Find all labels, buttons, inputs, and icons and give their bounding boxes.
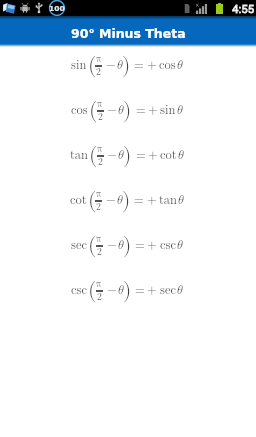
staticText: ( bbox=[88, 235, 97, 257]
staticText: cot bbox=[70, 194, 87, 207]
staticText: 𝜃 bbox=[118, 104, 124, 117]
staticText: = bbox=[134, 194, 144, 207]
staticText: 2 bbox=[97, 247, 102, 257]
staticText: ) bbox=[122, 55, 131, 77]
staticText: − bbox=[107, 104, 117, 117]
staticText: csc bbox=[160, 239, 177, 252]
staticText: cos bbox=[71, 104, 88, 117]
staticText: π bbox=[97, 144, 103, 154]
staticText: − bbox=[107, 239, 117, 252]
staticText: π bbox=[96, 234, 102, 244]
staticText: + bbox=[147, 239, 157, 252]
staticText: sin bbox=[71, 59, 87, 72]
staticText: 100 bbox=[49, 4, 65, 13]
staticText: π bbox=[96, 279, 102, 289]
staticText: 𝜃 bbox=[118, 149, 124, 162]
staticText: − bbox=[106, 59, 116, 72]
staticText: ( bbox=[88, 190, 97, 212]
staticText: cot bbox=[160, 149, 177, 162]
staticText: π bbox=[96, 54, 102, 64]
staticText: ( bbox=[89, 145, 98, 167]
staticText: csc bbox=[71, 284, 88, 297]
staticText: π bbox=[96, 189, 102, 199]
staticText: tan bbox=[70, 149, 89, 162]
staticText: 𝜃 bbox=[177, 239, 183, 252]
staticText: 𝜃 bbox=[178, 149, 184, 162]
staticText: 2 bbox=[96, 202, 101, 212]
staticText: 2 bbox=[98, 157, 103, 167]
staticText: 𝜃 bbox=[177, 284, 183, 297]
staticText: 2 bbox=[97, 292, 102, 302]
staticText: tan bbox=[159, 194, 178, 207]
button[interactable]: 90° Minus Theta bbox=[0, 16, 256, 44]
staticText: + bbox=[147, 194, 157, 207]
staticText: cos bbox=[159, 59, 176, 72]
staticText: ( bbox=[89, 100, 98, 122]
staticText: 90° Minus Theta bbox=[71, 26, 186, 41]
button[interactable]: sin bbox=[0, 52, 256, 97]
staticText: ) bbox=[122, 190, 131, 212]
staticText: + bbox=[147, 284, 157, 297]
staticText: π bbox=[97, 99, 103, 109]
staticText: + bbox=[148, 104, 158, 117]
staticText: − bbox=[107, 284, 117, 297]
staticText: ) bbox=[123, 235, 132, 257]
staticText: 𝜃 bbox=[178, 194, 184, 207]
staticText: 𝜃 bbox=[117, 59, 123, 72]
staticText: ) bbox=[123, 145, 132, 167]
button[interactable]: cot bbox=[0, 187, 256, 232]
staticText: 𝜃 bbox=[117, 194, 123, 207]
staticText: 𝜃 bbox=[118, 284, 124, 297]
staticText: sec bbox=[71, 239, 88, 252]
button[interactable]: cos bbox=[0, 97, 256, 142]
staticText: 𝜃 bbox=[177, 59, 183, 72]
staticText: 𝜃 bbox=[118, 239, 124, 252]
staticText: ( bbox=[88, 280, 97, 302]
staticText: sec bbox=[160, 284, 177, 297]
staticText: − bbox=[107, 149, 117, 162]
staticText: + bbox=[148, 149, 158, 162]
staticText: − bbox=[106, 194, 116, 207]
staticText: + bbox=[147, 59, 157, 72]
staticText: ) bbox=[123, 280, 132, 302]
staticText: 2 bbox=[98, 112, 103, 122]
staticText: = bbox=[135, 284, 145, 297]
button[interactable]: tan bbox=[0, 142, 256, 187]
staticText: 𝜃 bbox=[177, 104, 183, 117]
staticText: = bbox=[134, 59, 144, 72]
staticText: = bbox=[136, 104, 146, 117]
staticText: ( bbox=[88, 55, 97, 77]
staticText: ) bbox=[123, 100, 132, 122]
button[interactable]: sec bbox=[0, 232, 256, 277]
staticText: = bbox=[135, 239, 145, 252]
staticText: 4:55 bbox=[232, 2, 255, 15]
staticText: = bbox=[136, 149, 146, 162]
staticText: 2 bbox=[96, 67, 101, 77]
button[interactable]: csc bbox=[0, 277, 256, 322]
staticText: sin bbox=[160, 104, 176, 117]
